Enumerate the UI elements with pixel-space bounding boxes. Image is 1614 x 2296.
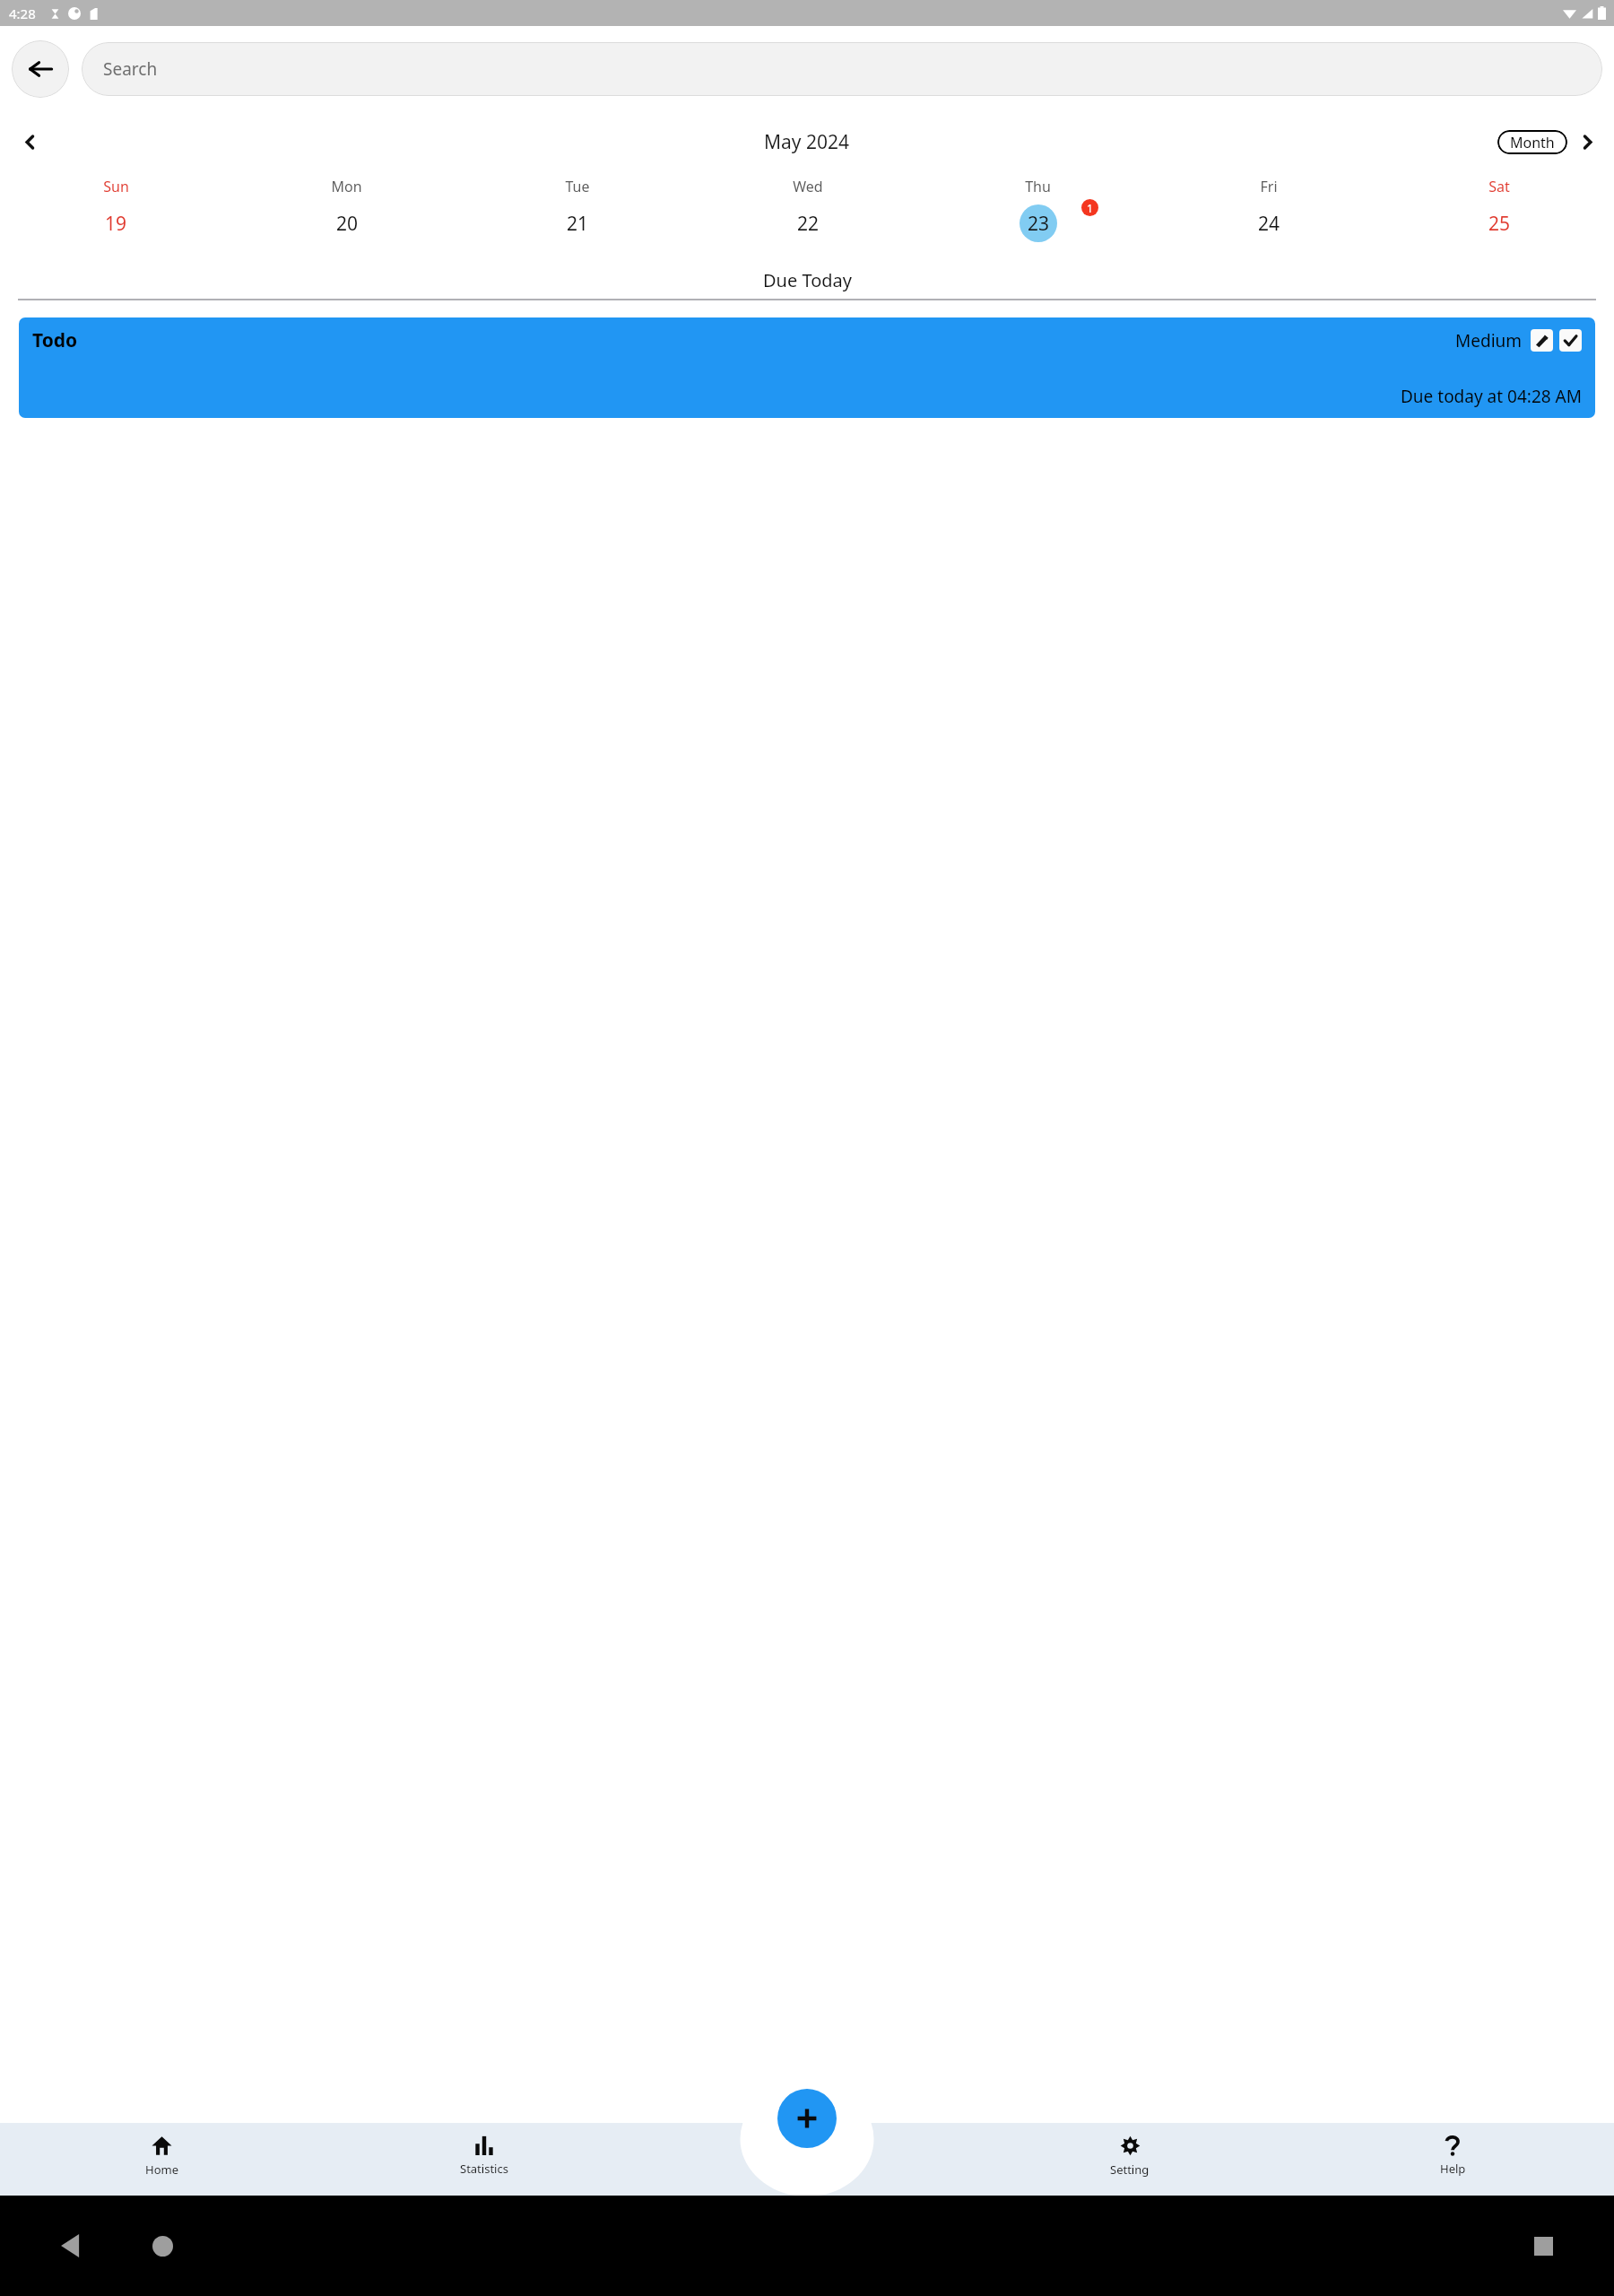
staticText: Medium	[1455, 329, 1523, 352]
staticText: Home	[145, 2161, 178, 2178]
button[interactable]: Complete	[1559, 329, 1582, 352]
button[interactable]: Todo	[19, 317, 1595, 418]
staticText: 1	[1087, 201, 1093, 215]
button[interactable]: Help	[1291, 2123, 1614, 2196]
staticText: 20	[336, 211, 359, 237]
button[interactable]: Sun	[0, 171, 231, 261]
button[interactable]: Add	[777, 2089, 837, 2148]
staticText: Due Today	[763, 268, 852, 292]
staticText: Fri	[1260, 177, 1278, 196]
staticText: Search	[103, 57, 158, 81]
button[interactable]: Next	[1567, 122, 1607, 161]
staticText: Wed	[793, 177, 823, 196]
button[interactable]: Thu	[923, 171, 1153, 261]
staticText: 24	[1258, 211, 1280, 237]
button[interactable]: Previous	[9, 121, 50, 162]
staticText: Setting	[1110, 2161, 1150, 2178]
staticText: Statistics	[460, 2161, 508, 2177]
staticText: 23	[1028, 211, 1050, 237]
button[interactable]: Fri	[1153, 171, 1384, 261]
staticText: Mon	[331, 177, 362, 196]
staticText: 22	[797, 211, 820, 237]
staticText: Month	[1510, 133, 1555, 152]
button[interactable]: Back	[12, 40, 69, 98]
staticText: Help	[1440, 2161, 1466, 2177]
button[interactable]: Setting	[968, 2123, 1291, 2196]
staticText: 21	[567, 211, 589, 237]
staticText: 25	[1488, 211, 1511, 237]
staticText: Todo	[32, 327, 78, 353]
button[interactable]: Mon	[231, 171, 462, 261]
staticText: Thu	[1025, 177, 1051, 196]
button[interactable]: Statistics	[323, 2123, 646, 2196]
staticText: Tue	[565, 177, 590, 196]
staticText: Sat	[1488, 177, 1510, 196]
button[interactable]: Sat	[1384, 171, 1614, 261]
button[interactable]: Search	[82, 42, 1602, 96]
button[interactable]: Tue	[462, 171, 692, 261]
staticText: May 2024	[764, 129, 850, 155]
button[interactable]: Wed	[692, 171, 923, 261]
button[interactable]: Month	[1497, 130, 1567, 154]
button[interactable]: Home	[0, 2123, 323, 2196]
staticText: 4:28	[9, 4, 36, 22]
staticText: 19	[105, 211, 127, 237]
button[interactable]: Edit	[1531, 329, 1553, 352]
staticText: Due today at 04:28 AM	[1401, 385, 1582, 408]
staticText: Sun	[103, 177, 129, 196]
